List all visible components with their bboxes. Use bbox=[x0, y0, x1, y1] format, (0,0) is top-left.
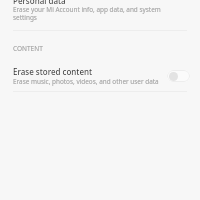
staticText: Personal data bbox=[13, 0, 66, 6]
staticText: Erase stored content bbox=[13, 66, 93, 77]
staticText: CONTENT bbox=[13, 44, 43, 53]
button[interactable]: Erase stored content bbox=[0, 55, 200, 91]
button[interactable]: Erase stored content toggle, off bbox=[167, 70, 190, 82]
staticText: Erase music, photos, videos, and other u… bbox=[13, 77, 159, 86]
staticText: Erase your Mi Account info, app data, an… bbox=[13, 5, 161, 14]
button[interactable]: Personal data bbox=[0, 0, 200, 30]
staticText: settings bbox=[13, 13, 37, 22]
